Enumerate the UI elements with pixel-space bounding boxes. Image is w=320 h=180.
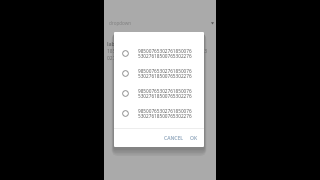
staticText: OK xyxy=(190,135,198,142)
button[interactable]: CANCEL xyxy=(161,132,186,145)
staticText: 98500765302761850076 5302761850076530227… xyxy=(138,48,192,59)
button[interactable]: 98500765302761850076 5302761850076530227… xyxy=(114,103,204,123)
button[interactable]: OK xyxy=(187,132,201,145)
button[interactable]: dropdown xyxy=(109,19,213,27)
staticText: 98500765302761850076 5302761850076530227… xyxy=(138,88,192,99)
other: Open dropdown xyxy=(211,22,214,25)
staticText: dropdown xyxy=(109,20,132,26)
button[interactable]: 98500765302761850076 5302761850076530227… xyxy=(114,83,204,103)
staticText: CANCEL xyxy=(164,135,183,142)
staticText: 98500765302761850076 5302761850076530227… xyxy=(138,108,192,119)
staticText: 027618500765302761850076530276185 xyxy=(107,55,202,62)
staticText: 18500765302761850076530276185007653 xyxy=(107,48,208,55)
staticText: label xyxy=(107,41,120,48)
staticText: 98500765302761850076 5302761850076530227… xyxy=(138,68,192,79)
button[interactable]: 98500765302761850076 5302761850076530227… xyxy=(114,63,204,83)
button[interactable]: 98500765302761850076 5302761850076530227… xyxy=(114,43,204,63)
